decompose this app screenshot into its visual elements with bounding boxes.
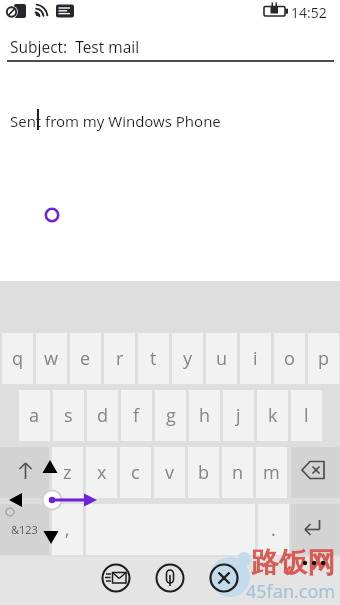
button[interactable] [210, 564, 238, 592]
staticText: h [199, 403, 211, 428]
button[interactable]: a [19, 390, 50, 441]
button[interactable]: u [206, 333, 237, 384]
button[interactable]: r [104, 333, 135, 384]
button[interactable]: v [154, 447, 185, 498]
button[interactable]: &123 [0, 504, 49, 555]
staticText: v [165, 460, 175, 485]
button[interactable]: k [257, 390, 288, 441]
staticText: q [12, 346, 24, 371]
button[interactable]: f [121, 390, 152, 441]
button[interactable]: g [155, 390, 186, 441]
staticText: Sent from my Windows Phone [10, 111, 221, 131]
button[interactable]: l [291, 390, 322, 441]
staticText: j [236, 403, 241, 428]
staticText: y [183, 346, 193, 371]
button[interactable] [0, 557, 340, 605]
button[interactable]: d [87, 390, 118, 441]
staticText: d [97, 403, 109, 428]
staticText: c [131, 460, 140, 485]
button[interactable]: p [308, 333, 339, 384]
staticText: i [253, 346, 258, 371]
staticText: f [133, 403, 140, 428]
button[interactable]: c [120, 447, 151, 498]
staticText: p [318, 346, 330, 371]
staticText: m [263, 460, 280, 485]
button[interactable] [0, 64, 340, 280]
staticText: Subject: Test mail [10, 36, 140, 57]
button[interactable]: x [86, 447, 117, 498]
staticText: a [29, 403, 40, 428]
staticText: &123 [11, 522, 38, 537]
staticText: s [64, 403, 73, 428]
staticText: , [65, 517, 70, 542]
staticText: o [284, 346, 295, 371]
staticText: w [44, 346, 59, 371]
button[interactable]: t [138, 333, 169, 384]
staticText: k [268, 403, 278, 428]
staticText: n [232, 460, 244, 485]
staticText: l [304, 403, 309, 428]
staticText: r [116, 346, 124, 371]
button[interactable]: e [70, 333, 101, 384]
button[interactable] [156, 564, 184, 592]
button[interactable]: . [258, 504, 289, 555]
button[interactable]: y [172, 333, 203, 384]
button[interactable]: i [240, 333, 271, 384]
button[interactable] [86, 504, 255, 555]
staticText: z [63, 460, 72, 485]
staticText: x [97, 460, 107, 485]
button[interactable] [0, 447, 49, 498]
button[interactable]: o [274, 333, 305, 384]
button[interactable] [291, 447, 340, 498]
staticText: e [80, 346, 91, 371]
staticText: . [271, 517, 276, 542]
button[interactable]: n [222, 447, 253, 498]
staticText: 14:52 [291, 3, 327, 22]
button[interactable]: m [256, 447, 287, 498]
button[interactable] [102, 564, 130, 592]
button[interactable] [297, 552, 333, 574]
button[interactable]: , [52, 504, 83, 555]
staticText: g [166, 403, 176, 428]
staticText: b [198, 460, 210, 485]
button[interactable]: h [189, 390, 220, 441]
button[interactable]: b [188, 447, 219, 498]
staticText: u [216, 346, 228, 371]
button[interactable]: s [53, 390, 84, 441]
button[interactable]: z [52, 447, 83, 498]
button[interactable] [0, 27, 340, 62]
button[interactable]: w [36, 333, 67, 384]
button[interactable]: j [223, 390, 254, 441]
staticText: 45fan.com [246, 579, 336, 604]
staticText: t [150, 346, 157, 371]
staticText: 路饭网 [251, 545, 335, 580]
button[interactable] [291, 504, 340, 555]
button[interactable]: q [2, 333, 33, 384]
